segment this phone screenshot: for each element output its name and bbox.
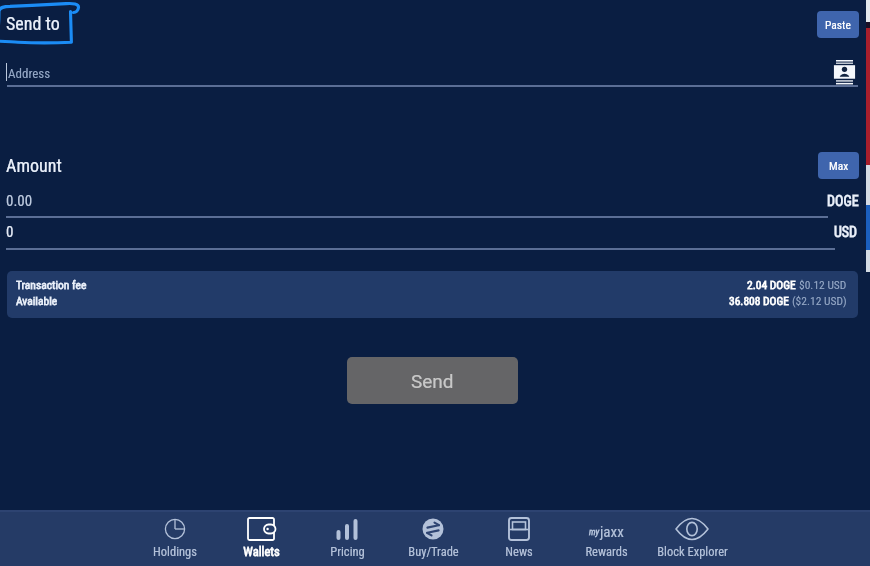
button[interactable]: Block Explorer [657, 510, 727, 566]
button[interactable]: Send [347, 357, 518, 404]
staticText: Transaction fee [16, 278, 87, 291]
staticText: Max [829, 159, 849, 172]
staticText: 0.00 [6, 192, 33, 210]
button[interactable]: my [571, 510, 641, 566]
staticText: 0 [6, 223, 14, 241]
staticText: Buy/Trade [408, 544, 459, 559]
button[interactable]: Max [818, 152, 859, 179]
button[interactable]: Buy/Trade [398, 510, 468, 566]
staticText: Wallets [243, 544, 280, 559]
staticText: News [505, 544, 533, 559]
staticText: Paste [825, 18, 851, 31]
staticText: jaxx [600, 523, 624, 541]
button[interactable]: Paste [817, 11, 859, 38]
staticText: Send [411, 370, 454, 392]
staticText: $0.12 USD [799, 278, 847, 291]
staticText: Holdings [153, 544, 197, 559]
staticText: USD [834, 224, 858, 240]
button[interactable]: Wallets [226, 510, 296, 566]
button[interactable]: News [484, 510, 554, 566]
staticText: Amount [6, 155, 62, 176]
button[interactable]: Contacts [833, 60, 856, 86]
staticText: ($2.12 USD) [792, 294, 847, 307]
button[interactable]: Pricing [312, 510, 382, 566]
staticText: 2.04 DOGE [747, 278, 799, 291]
staticText: Pricing [330, 544, 365, 559]
staticText: Block Explorer [657, 544, 728, 559]
staticText: my [589, 527, 600, 538]
staticText: Rewards [585, 544, 628, 559]
staticText: DOGE [827, 193, 859, 209]
staticText: Available [16, 294, 58, 307]
staticText: 36.808 DOGE [729, 294, 792, 307]
button[interactable]: Holdings [140, 510, 210, 566]
staticText: Address [8, 66, 51, 81]
staticText: Send to [6, 13, 60, 34]
